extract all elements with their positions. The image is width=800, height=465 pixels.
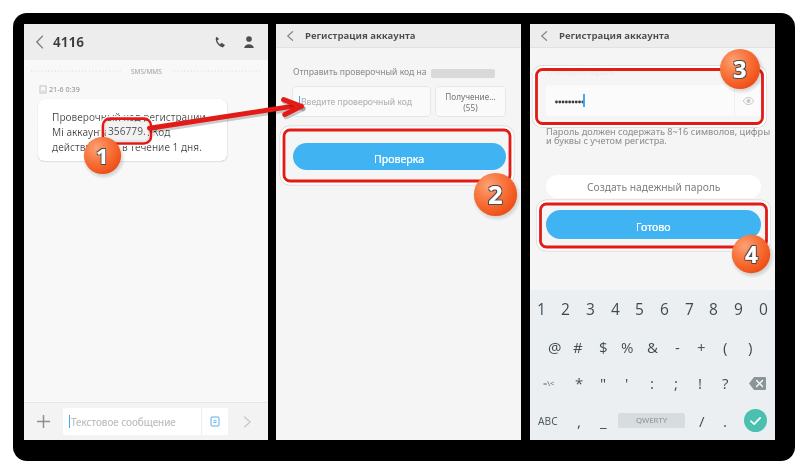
button[interactable]: 2	[553, 294, 577, 322]
staticText: Введите проверочный код	[301, 96, 412, 108]
button[interactable]: Send	[228, 403, 266, 440]
staticText: :	[650, 373, 655, 393]
button[interactable]: :	[641, 368, 664, 398]
staticText: 2	[561, 298, 570, 319]
staticText: Регистрация аккаунта	[305, 29, 416, 42]
staticText: 8	[709, 298, 718, 319]
staticText: 3	[734, 54, 748, 86]
button[interactable]: 4	[603, 294, 627, 322]
staticText: SMS/MMS	[131, 67, 162, 76]
staticText: !	[698, 373, 703, 393]
button[interactable]: Введите проверочный код	[292, 86, 431, 117]
staticText: 1	[95, 142, 108, 172]
staticText: ,	[577, 411, 582, 431]
button[interactable]: Создать надежный пароль	[546, 175, 761, 198]
button[interactable]: Call	[206, 28, 234, 56]
staticText: $	[599, 337, 608, 357]
staticText: '	[625, 373, 629, 393]
button[interactable]: -	[665, 332, 689, 362]
staticText: 3	[733, 53, 747, 85]
button[interactable]: SMS counter	[202, 408, 228, 435]
staticText: 4	[744, 238, 757, 269]
button[interactable]: Show password	[546, 85, 762, 116]
staticText: 3	[732, 54, 746, 86]
button[interactable]: Проверочный код регистрации Mi аккаунта …	[38, 99, 227, 161]
button[interactable]: Enter	[744, 409, 767, 432]
button[interactable]: Проверка	[293, 143, 506, 170]
button[interactable]: Add attachment	[24, 403, 63, 440]
button[interactable]: Contact details	[234, 27, 264, 57]
staticText: 5	[635, 298, 644, 319]
button[interactable]: QWERTY	[618, 413, 685, 428]
staticText: "	[600, 373, 607, 393]
staticText: Создать надежный пароль	[587, 180, 721, 194]
button[interactable]: (	[713, 332, 737, 362]
staticText: ABC	[538, 414, 558, 428]
staticText: 1	[97, 140, 110, 170]
staticText: /	[699, 411, 705, 431]
staticText: 3	[586, 298, 595, 319]
staticText: (	[723, 337, 728, 357]
staticText: Проверка	[374, 152, 425, 166]
button[interactable]: _	[592, 406, 614, 436]
button[interactable]: ABC	[533, 406, 563, 436]
staticText: Текстовое сообщение	[71, 415, 176, 428]
button[interactable]: Back	[27, 30, 51, 54]
button[interactable]: 5	[627, 294, 651, 322]
staticText: *	[575, 373, 584, 393]
staticText: 4	[744, 240, 757, 271]
staticText: ;	[674, 373, 679, 393]
button[interactable]: /	[691, 406, 713, 436]
staticText: -	[675, 337, 680, 357]
staticText: Готово	[636, 220, 671, 234]
button[interactable]: Back	[535, 27, 553, 45]
staticText: Получение… (55)	[445, 91, 496, 113]
staticText: 1	[97, 142, 110, 172]
staticText: 2	[489, 178, 504, 213]
button[interactable]: Готово	[546, 210, 761, 239]
staticText: 2	[488, 177, 503, 212]
button[interactable]: Backspace	[743, 368, 771, 398]
button[interactable]: %	[615, 332, 639, 362]
button[interactable]: !	[689, 368, 712, 398]
staticText: .	[723, 411, 728, 431]
staticText: 4	[611, 298, 620, 319]
button[interactable]: 1	[529, 294, 553, 322]
button[interactable]: +	[689, 332, 713, 362]
staticText: +	[697, 337, 706, 357]
button[interactable]: @	[543, 332, 567, 362]
button[interactable]: "	[592, 368, 615, 398]
staticText: 2	[489, 176, 504, 211]
staticText: Пароль должен содержать 8~16 символов, ц…	[546, 125, 771, 147]
button[interactable]: 9	[726, 294, 750, 322]
staticText: 1	[537, 298, 546, 319]
button[interactable]: ;	[665, 368, 688, 398]
button[interactable]: '	[615, 368, 638, 398]
button[interactable]: ?	[714, 368, 737, 398]
staticText: 0	[759, 298, 768, 319]
button[interactable]: &	[640, 332, 664, 362]
button[interactable]: 7	[677, 294, 701, 322]
button[interactable]: Получение… (55)	[435, 86, 506, 117]
button[interactable]: #	[566, 332, 590, 362]
staticText: ?	[722, 373, 729, 393]
button[interactable]: 0	[751, 294, 775, 322]
button[interactable]: *	[568, 368, 591, 398]
button[interactable]: )	[738, 332, 762, 362]
staticText: 9	[734, 298, 743, 319]
staticText: QWERTY	[636, 415, 668, 426]
button[interactable]: .	[714, 406, 736, 436]
button[interactable]: 3	[578, 294, 602, 322]
button[interactable]: 8	[701, 294, 725, 322]
button[interactable]: $	[591, 332, 615, 362]
staticText: Проверочный код регистрации Mi аккаунта …	[52, 110, 206, 153]
staticText: 1	[95, 140, 108, 170]
button[interactable]: ,	[568, 406, 590, 436]
staticText: _	[600, 411, 607, 431]
button[interactable]: 6	[652, 294, 676, 322]
button[interactable]: =\<	[535, 368, 563, 398]
staticText: 2	[487, 176, 502, 211]
button[interactable]: Show password	[735, 87, 762, 114]
button[interactable]: Back	[281, 27, 299, 45]
button[interactable]: Текстовое сообщение	[63, 408, 228, 435]
